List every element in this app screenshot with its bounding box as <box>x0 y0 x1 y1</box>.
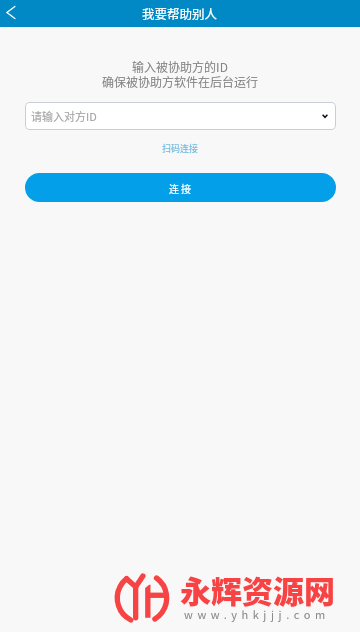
button[interactable]: 请输入对方ID <box>25 102 336 130</box>
staticText: 确保被协助方软件在后台运行 <box>0 73 360 90</box>
staticText: 输入被协助方的ID <box>0 58 360 75</box>
staticText: 连接 <box>169 181 193 195</box>
button[interactable]: 扫码连接 <box>158 140 203 157</box>
staticText: 请输入对方ID <box>31 108 97 124</box>
staticText: 我要帮助别人 <box>142 4 218 22</box>
staticText: 扫码连接 <box>162 142 199 155</box>
staticText: 永辉资源网 <box>180 567 335 612</box>
staticText: www.yhkjjj.com <box>184 606 330 622</box>
button[interactable]: Back <box>0 1 26 27</box>
button[interactable]: 连接 <box>25 173 336 202</box>
